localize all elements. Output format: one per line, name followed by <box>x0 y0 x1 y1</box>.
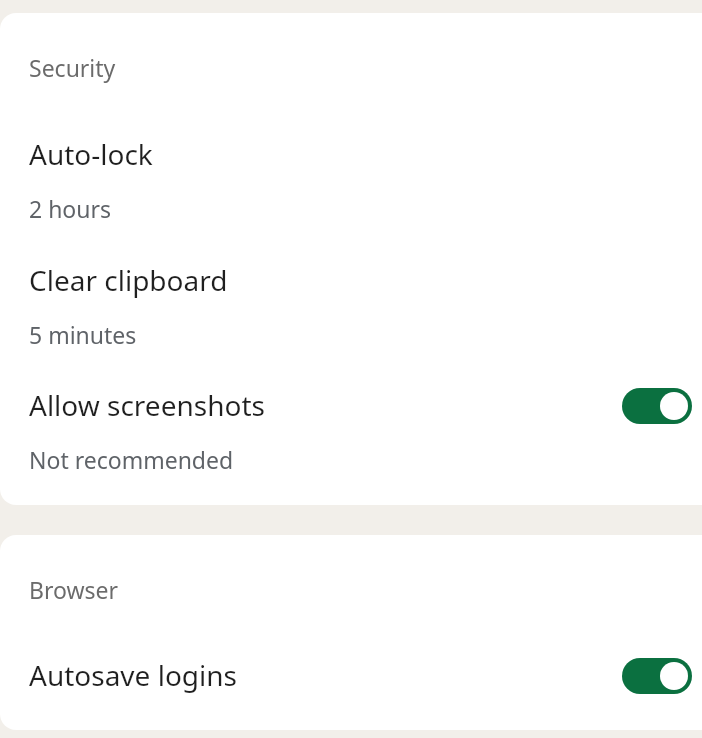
button[interactable]: Auto-lock <box>0 118 702 236</box>
button[interactable]: Autosave logins <box>622 658 692 694</box>
button[interactable]: Clear clipboard <box>0 244 702 362</box>
staticText: 2 hours <box>29 193 111 224</box>
staticText: Browser <box>29 574 119 605</box>
staticText: 5 minutes <box>29 319 137 350</box>
staticText: Security <box>29 52 116 83</box>
staticText: Allow screenshots <box>29 386 265 424</box>
button[interactable]: Allow screenshots <box>622 388 692 424</box>
staticText: Autosave logins <box>29 656 237 694</box>
staticText: Clear clipboard <box>29 261 228 299</box>
button[interactable]: Allow screenshots <box>0 369 702 497</box>
staticText: Not recommended <box>29 444 234 475</box>
button[interactable]: Autosave logins <box>0 640 702 730</box>
staticText: Auto-lock <box>29 135 153 173</box>
